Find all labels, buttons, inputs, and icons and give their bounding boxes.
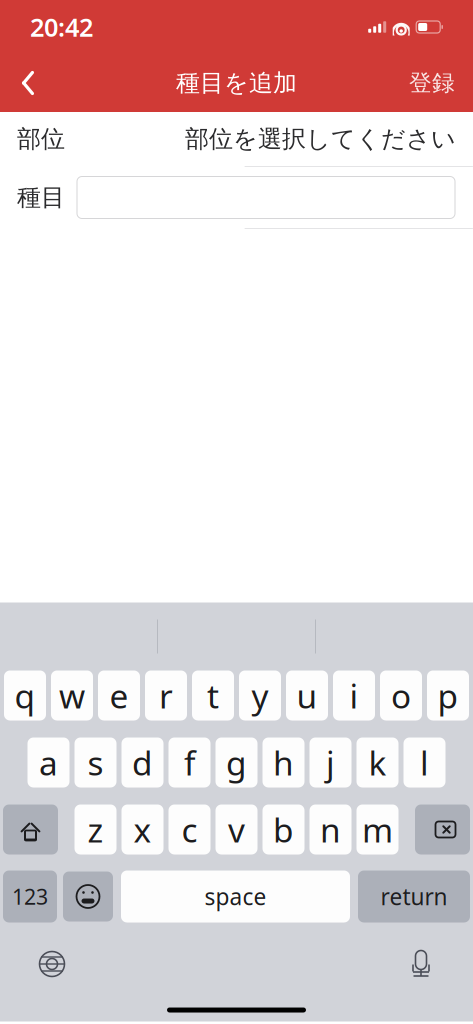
- staticText: 部位を選択してください: [185, 124, 456, 154]
- staticText: space: [204, 881, 266, 911]
- staticText: 種目を追加: [176, 68, 297, 98]
- button[interactable]: t: [192, 670, 234, 720]
- button[interactable]: y: [239, 670, 281, 720]
- staticText: 20:42: [30, 10, 93, 44]
- button[interactable]: 登録: [397, 61, 467, 105]
- staticText: y: [251, 673, 268, 718]
- button[interactable]: d: [121, 737, 163, 787]
- staticText: 部位: [17, 124, 65, 154]
- staticText: p: [437, 673, 458, 718]
- button[interactable]: n: [309, 804, 351, 854]
- button[interactable]: return: [358, 870, 470, 922]
- button[interactable]: space: [121, 870, 350, 922]
- staticText: o: [391, 673, 411, 718]
- button[interactable]: j: [309, 737, 351, 787]
- staticText: k: [368, 740, 386, 785]
- button[interactable]: v: [215, 804, 257, 854]
- staticText: w: [59, 673, 85, 718]
- button[interactable]: c: [168, 804, 210, 854]
- staticText: a: [39, 740, 58, 785]
- staticText: i: [349, 673, 358, 718]
- staticText: r: [159, 673, 173, 718]
- button[interactable]: Delete: [415, 804, 470, 854]
- button[interactable]: f: [168, 737, 210, 787]
- staticText: f: [184, 740, 195, 785]
- button[interactable]: w: [51, 670, 93, 720]
- staticText: g: [226, 740, 247, 785]
- button[interactable]: r: [145, 670, 187, 720]
- button[interactable]: i: [333, 670, 375, 720]
- button[interactable]: b: [262, 804, 304, 854]
- button[interactable]: 123: [3, 870, 57, 922]
- staticText: d: [132, 740, 153, 785]
- button[interactable]: x: [121, 804, 163, 854]
- button[interactable]: Shift: [3, 804, 58, 854]
- button[interactable]: 部位: [0, 112, 473, 166]
- button[interactable]: e: [98, 670, 140, 720]
- button[interactable]: u: [286, 670, 328, 720]
- staticText: l: [420, 740, 429, 785]
- staticText: t: [207, 673, 219, 718]
- button[interactable]: s: [74, 737, 116, 787]
- staticText: x: [133, 807, 151, 852]
- staticText: e: [109, 673, 128, 718]
- button[interactable]: o: [380, 670, 422, 720]
- staticText: return: [380, 881, 447, 911]
- staticText: s: [87, 740, 103, 785]
- staticText: j: [326, 740, 335, 785]
- button[interactable]: l: [403, 737, 445, 787]
- button[interactable]: m: [356, 804, 398, 854]
- staticText: b: [273, 807, 294, 852]
- staticText: c: [181, 807, 197, 852]
- button[interactable]: h: [262, 737, 304, 787]
- staticText: h: [273, 740, 294, 785]
- button[interactable]: a: [27, 737, 69, 787]
- staticText: v: [228, 807, 245, 852]
- staticText: z: [87, 807, 103, 852]
- staticText: 123: [12, 882, 48, 911]
- button[interactable]: q: [4, 670, 46, 720]
- staticText: 登録: [409, 69, 455, 97]
- button[interactable]: Emoji: [63, 871, 113, 921]
- staticText: q: [14, 673, 35, 718]
- button[interactable]: k: [356, 737, 398, 787]
- button[interactable]: p: [427, 670, 469, 720]
- staticText: m: [362, 807, 393, 852]
- button[interactable]: Dictation: [397, 940, 445, 988]
- button[interactable]: Back: [6, 61, 50, 105]
- staticText: u: [296, 673, 317, 718]
- button[interactable]: g: [215, 737, 257, 787]
- button[interactable]: Next keyboard: [28, 940, 76, 988]
- staticText: 種目: [17, 183, 65, 212]
- button[interactable]: z: [74, 804, 116, 854]
- staticText: n: [320, 807, 341, 852]
